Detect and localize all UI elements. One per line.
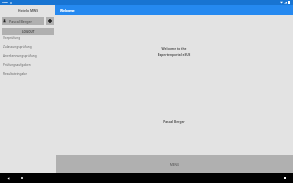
staticText: Zulassungsprüfung xyxy=(3,45,32,49)
staticText: Hotelo MWS xyxy=(18,8,38,12)
button[interactable]: Anerkennungsprüfung xyxy=(0,51,55,60)
button[interactable]: Recents xyxy=(281,174,289,182)
staticText: Anerkennungsprüfung xyxy=(3,54,37,58)
staticText: Welcome xyxy=(60,8,75,12)
button[interactable]: Pascal Berger xyxy=(2,17,44,25)
button[interactable]: Hotelo MWS xyxy=(0,5,55,15)
staticText: Resultateingabe xyxy=(3,72,27,76)
staticText: Prüfungsaufgaben xyxy=(3,63,31,67)
button[interactable]: Prüfungsaufgaben xyxy=(0,60,55,69)
button[interactable]: Welcome xyxy=(55,5,293,15)
button[interactable]: Resultateingabe xyxy=(0,69,55,78)
button[interactable]: LOGOUT xyxy=(2,28,54,35)
button[interactable]: Back xyxy=(4,174,12,182)
staticText: Welcome to the Expertenportal eSUS xyxy=(55,47,293,57)
staticText: LOGOUT xyxy=(22,30,35,34)
staticText: Vorprüfung xyxy=(3,36,21,40)
staticText: 12:48 xyxy=(2,1,8,4)
button[interactable]: Home xyxy=(18,174,26,182)
staticText: Pascal Berger xyxy=(55,120,293,124)
button[interactable]: Zulassungsprüfung xyxy=(0,42,55,51)
button[interactable]: Settings xyxy=(46,17,54,25)
staticText: Pascal Berger xyxy=(9,19,33,24)
staticText: MENU xyxy=(170,163,180,167)
button[interactable]: Vorprüfung xyxy=(0,33,55,42)
